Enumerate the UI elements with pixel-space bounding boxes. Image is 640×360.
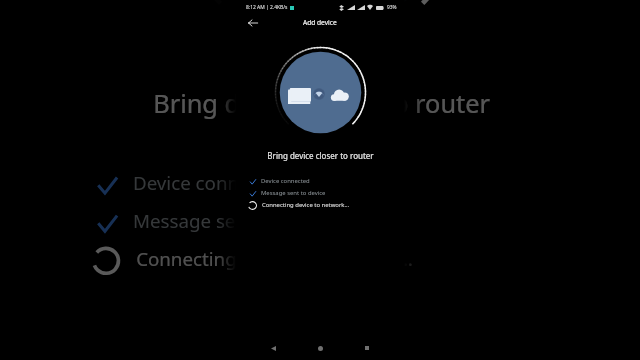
staticText: 8:12 AM | 2.4KB/s [246, 4, 288, 11]
staticText: Bring device closer to router [267, 150, 374, 161]
button[interactable]: Message sent to device [89, 202, 339, 240]
staticText: Bring device closer to router [152, 85, 491, 120]
staticText: Connecting device to network... [262, 201, 350, 209]
staticText: Message sent to device [133, 208, 339, 234]
staticText: 93% [387, 4, 397, 11]
staticText: Message sent to device [261, 189, 326, 197]
button[interactable]: Device connected [89, 164, 288, 202]
button[interactable]: Navigate up [245, 15, 261, 31]
button[interactable]: Back [266, 341, 280, 355]
button[interactable]: Home [313, 341, 327, 355]
staticText: Connecting device to network... [136, 247, 415, 272]
button[interactable]: Recent apps [360, 341, 374, 355]
button[interactable]: Connecting device to network... [89, 240, 415, 278]
button[interactable]: Device connected [247, 175, 310, 187]
staticText: Add device [303, 18, 337, 27]
staticText: Device connected [133, 170, 288, 196]
button[interactable]: Connecting device to network... [247, 199, 350, 211]
button[interactable]: Message sent to device [247, 187, 326, 199]
staticText: Device connected [261, 177, 310, 185]
